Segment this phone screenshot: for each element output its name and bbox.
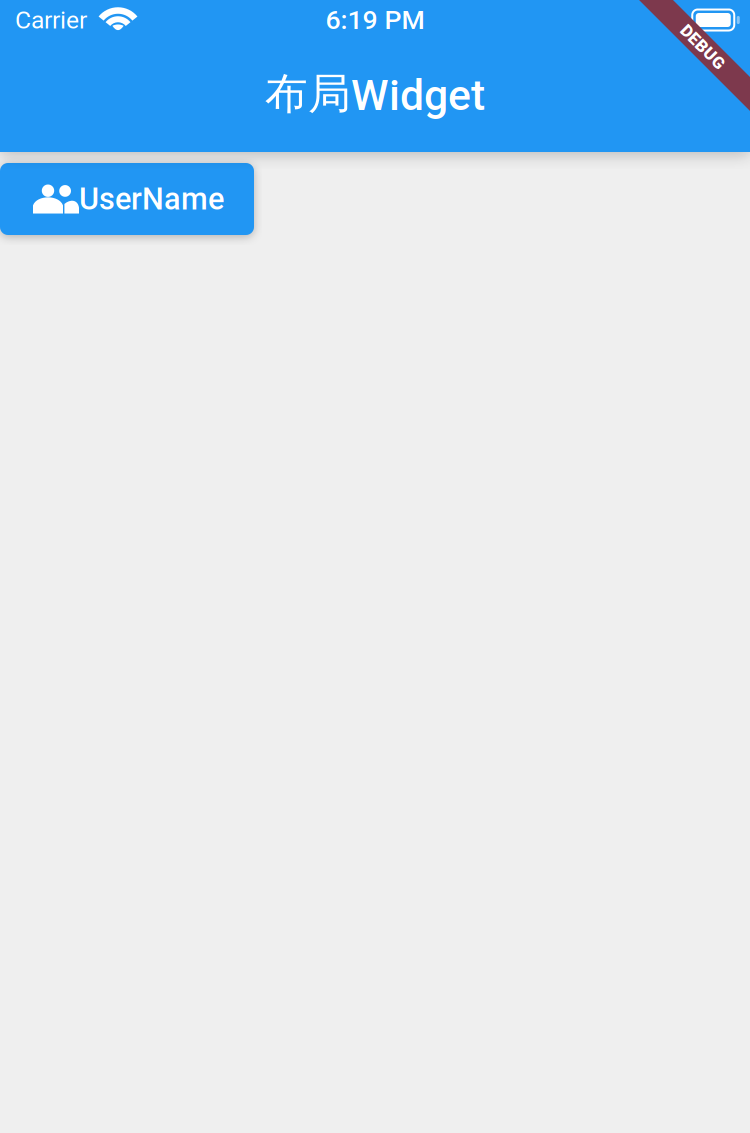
staticText: DEBUG [675, 37, 731, 57]
staticText: UserName [79, 181, 224, 217]
button[interactable]: UserName [0, 163, 254, 235]
staticText: 6:19 PM [325, 4, 424, 36]
staticText: Carrier [15, 5, 87, 34]
staticText: 布局Widget [265, 67, 485, 121]
